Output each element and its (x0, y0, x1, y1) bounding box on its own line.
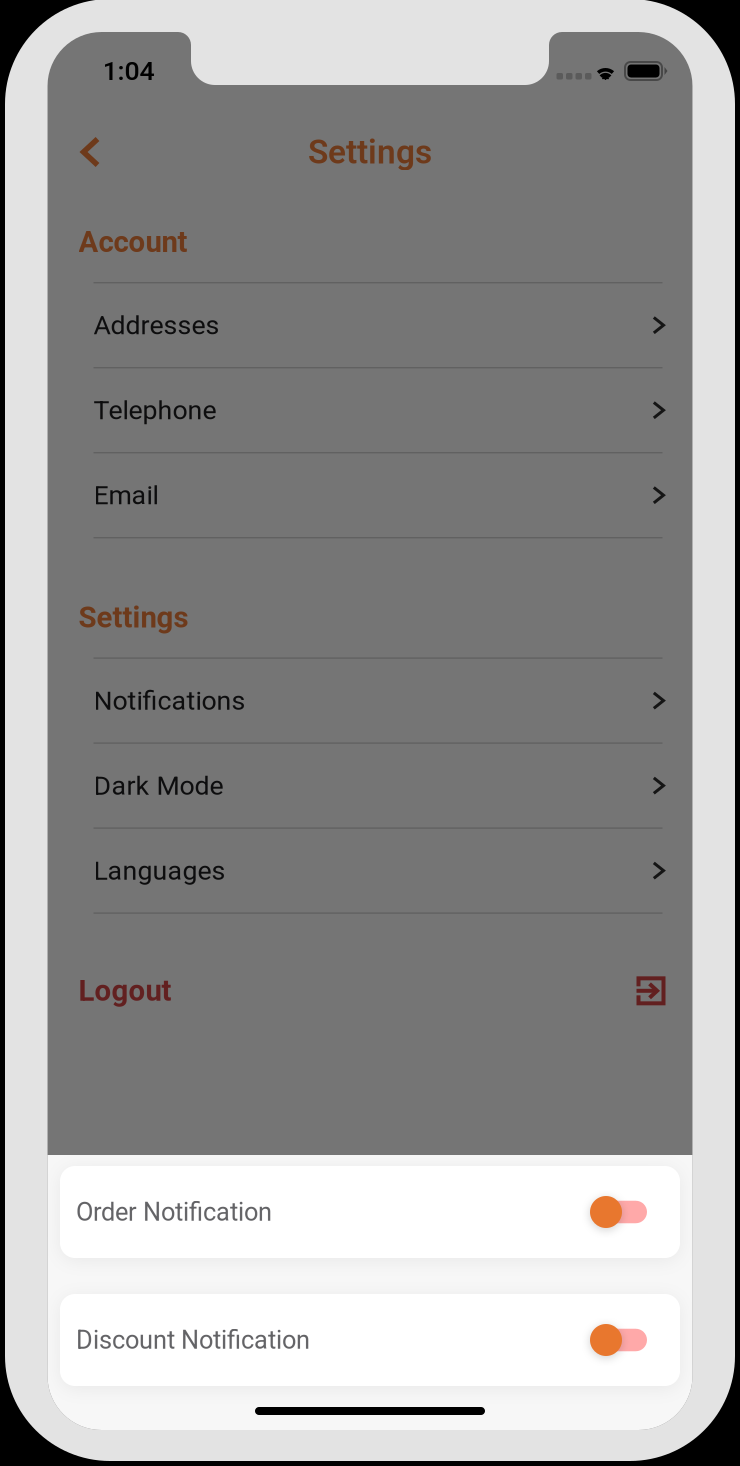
staticText: Settings (308, 132, 432, 172)
staticText: Settings (78, 600, 188, 635)
staticText: Account (78, 225, 187, 259)
button[interactable]: Notifications (47, 659, 692, 742)
button[interactable]: Dark Mode (47, 744, 692, 827)
staticText: Addresses (93, 310, 219, 341)
button[interactable]: Telephone (47, 368, 692, 452)
staticText: Dark Mode (93, 770, 223, 801)
staticText: Logout (78, 974, 171, 1008)
button[interactable]: Email (47, 453, 692, 537)
staticText: Notifications (93, 685, 245, 716)
button[interactable]: Addresses (47, 283, 692, 367)
button[interactable]: Discount Notification (60, 1294, 680, 1386)
button[interactable]: Languages (47, 829, 692, 912)
staticText: Order Notification (76, 1197, 272, 1227)
staticText: Email (93, 480, 158, 511)
button[interactable]: Back (59, 121, 121, 183)
staticText: Languages (93, 855, 225, 886)
staticText: 1:04 (102, 55, 154, 87)
button[interactable]: Order Notification (60, 1166, 680, 1258)
staticText: Discount Notification (76, 1325, 310, 1355)
button[interactable]: Logout (47, 970, 692, 1012)
staticText: Telephone (93, 395, 216, 426)
